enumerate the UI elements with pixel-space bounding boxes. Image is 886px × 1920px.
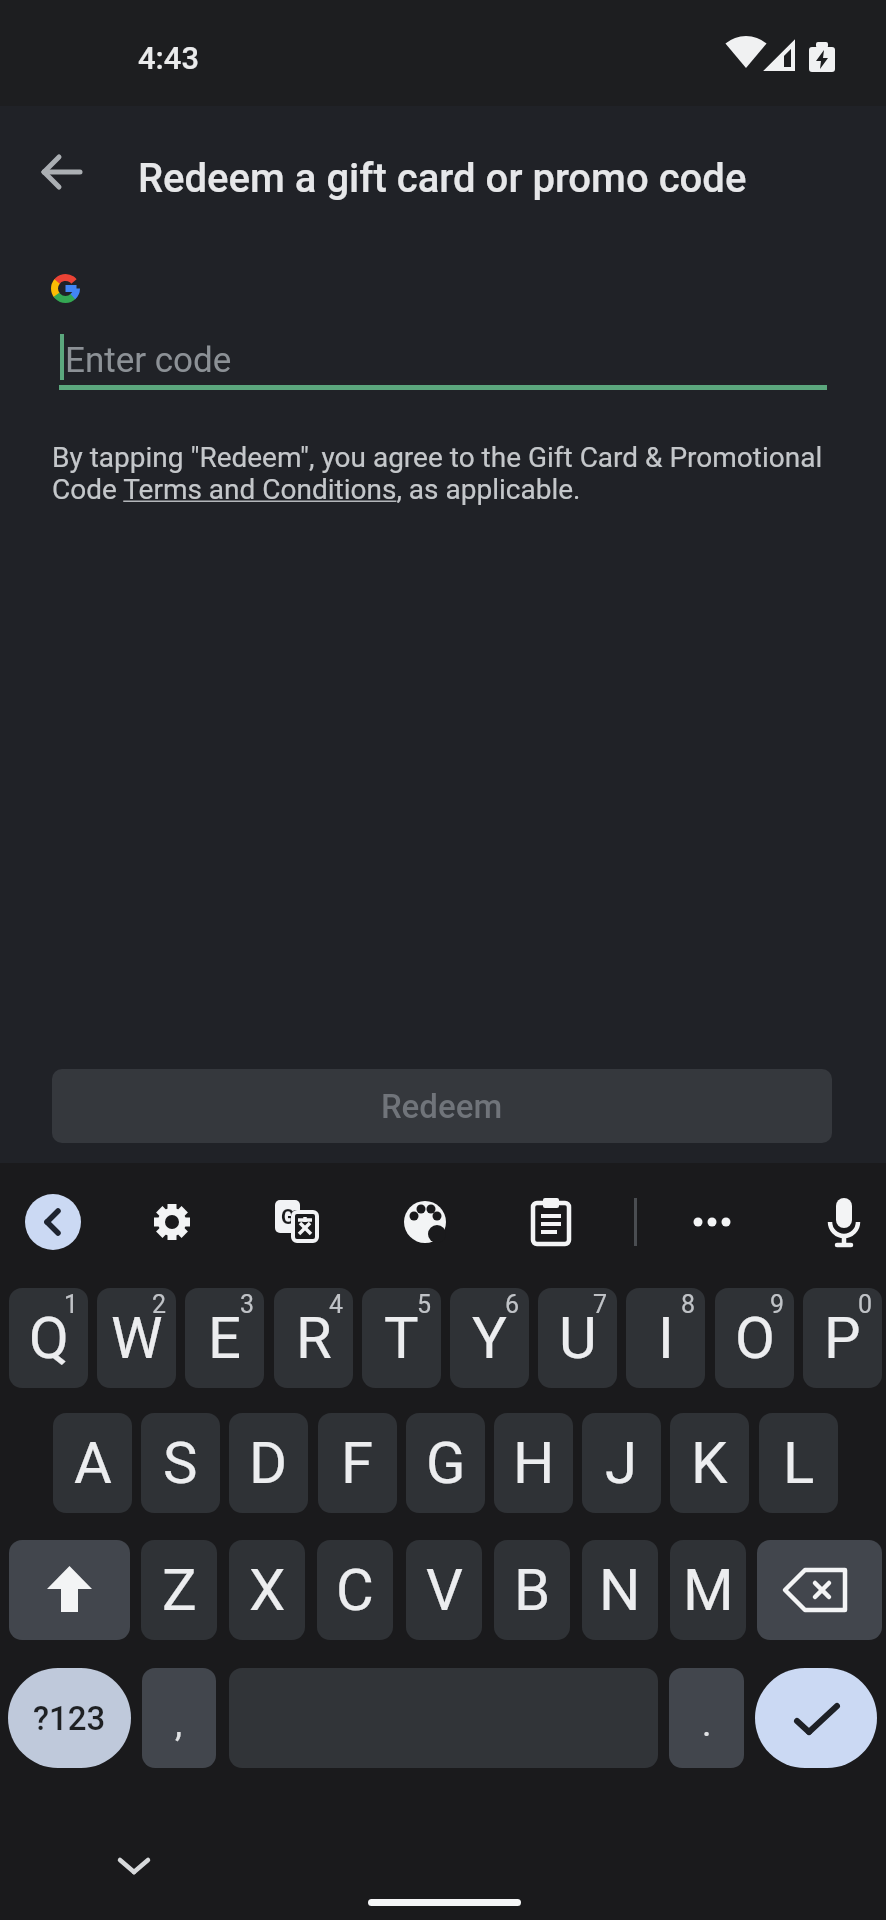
staticText: J: [605, 1429, 638, 1497]
button[interactable]: Redeem: [52, 1069, 832, 1143]
staticText: ,: [175, 1703, 183, 1745]
staticText: B: [514, 1556, 551, 1624]
button[interactable]: D: [229, 1413, 308, 1513]
staticText: By tapping "Redeem", you agree to the Gi…: [52, 441, 823, 474]
button[interactable]: [821, 1196, 865, 1250]
staticText: A: [74, 1429, 112, 1497]
button[interactable]: F: [318, 1413, 397, 1513]
staticText: Redeem: [381, 1087, 503, 1126]
button[interactable]: ?123: [8, 1668, 131, 1768]
button[interactable]: W: [97, 1288, 176, 1388]
button[interactable]: M: [670, 1540, 746, 1640]
button[interactable]: G: [406, 1413, 485, 1513]
button[interactable]: ,: [142, 1668, 216, 1768]
button[interactable]: G: [275, 1200, 319, 1244]
staticText: I: [658, 1304, 674, 1372]
button[interactable]: [755, 1668, 877, 1768]
staticText: .: [702, 1703, 712, 1745]
staticText: 2: [152, 1290, 167, 1319]
staticText: Y: [472, 1304, 507, 1372]
button[interactable]: P: [803, 1288, 882, 1388]
button[interactable]: Code Terms and Conditions, as applicable…: [52, 473, 581, 506]
staticText: N: [599, 1556, 641, 1624]
staticText: M: [683, 1556, 734, 1624]
button[interactable]: E: [185, 1288, 264, 1388]
staticText: 3: [240, 1290, 255, 1319]
staticText: 5: [417, 1290, 432, 1319]
staticText: 9: [770, 1290, 785, 1319]
staticText: O: [735, 1304, 775, 1372]
button[interactable]: Y: [450, 1288, 529, 1388]
staticText: 0: [858, 1290, 873, 1319]
staticText: K: [691, 1429, 728, 1497]
staticText: H: [513, 1429, 555, 1497]
button[interactable]: S: [141, 1413, 220, 1513]
button[interactable]: V: [406, 1540, 482, 1640]
button[interactable]: X: [229, 1540, 305, 1640]
staticText: Enter code: [65, 340, 232, 381]
staticText: E: [208, 1304, 241, 1372]
button[interactable]: K: [670, 1413, 749, 1513]
button[interactable]: J: [582, 1413, 661, 1513]
staticText: R: [296, 1304, 332, 1372]
staticText: G: [281, 1205, 295, 1228]
button[interactable]: [114, 1852, 154, 1880]
button[interactable]: T: [362, 1288, 441, 1388]
button[interactable]: O: [715, 1288, 794, 1388]
button[interactable]: .: [669, 1668, 744, 1768]
button[interactable]: B: [494, 1540, 570, 1640]
staticText: T: [384, 1304, 419, 1372]
staticText: D: [249, 1429, 288, 1497]
button[interactable]: N: [582, 1540, 658, 1640]
staticText: S: [163, 1429, 198, 1497]
staticText: 1: [64, 1290, 79, 1319]
staticText: ?123: [33, 1699, 106, 1738]
staticText: G: [426, 1429, 466, 1497]
button[interactable]: H: [494, 1413, 573, 1513]
button[interactable]: L: [759, 1413, 838, 1513]
staticText: F: [341, 1429, 374, 1497]
button[interactable]: [40, 150, 84, 194]
staticText: V: [426, 1556, 463, 1624]
button[interactable]: Z: [141, 1540, 217, 1640]
button[interactable]: [25, 1194, 81, 1250]
button[interactable]: C: [317, 1540, 393, 1640]
staticText: 8: [681, 1290, 696, 1319]
staticText: 4:43: [138, 40, 200, 76]
staticText: 6: [505, 1290, 520, 1319]
staticText: C: [336, 1556, 374, 1624]
button[interactable]: U: [538, 1288, 617, 1388]
button[interactable]: R: [274, 1288, 353, 1388]
button[interactable]: [152, 1202, 192, 1242]
staticText: Redeem a gift card or promo code: [138, 155, 747, 202]
button[interactable]: I: [626, 1288, 705, 1388]
button[interactable]: [403, 1200, 447, 1244]
button[interactable]: [9, 1540, 130, 1640]
staticText: 7: [593, 1290, 608, 1319]
staticText: X: [249, 1556, 286, 1624]
staticText: L: [783, 1429, 815, 1497]
button[interactable]: [757, 1540, 882, 1640]
button[interactable]: Q: [9, 1288, 88, 1388]
button[interactable]: [693, 1216, 733, 1228]
staticText: Q: [29, 1304, 69, 1372]
staticText: 4: [329, 1290, 344, 1319]
staticText: W: [111, 1304, 163, 1372]
staticText: P: [824, 1304, 861, 1372]
button[interactable]: [530, 1198, 572, 1246]
staticText: U: [559, 1304, 597, 1372]
button[interactable]: A: [53, 1413, 132, 1513]
staticText: Z: [162, 1556, 197, 1624]
